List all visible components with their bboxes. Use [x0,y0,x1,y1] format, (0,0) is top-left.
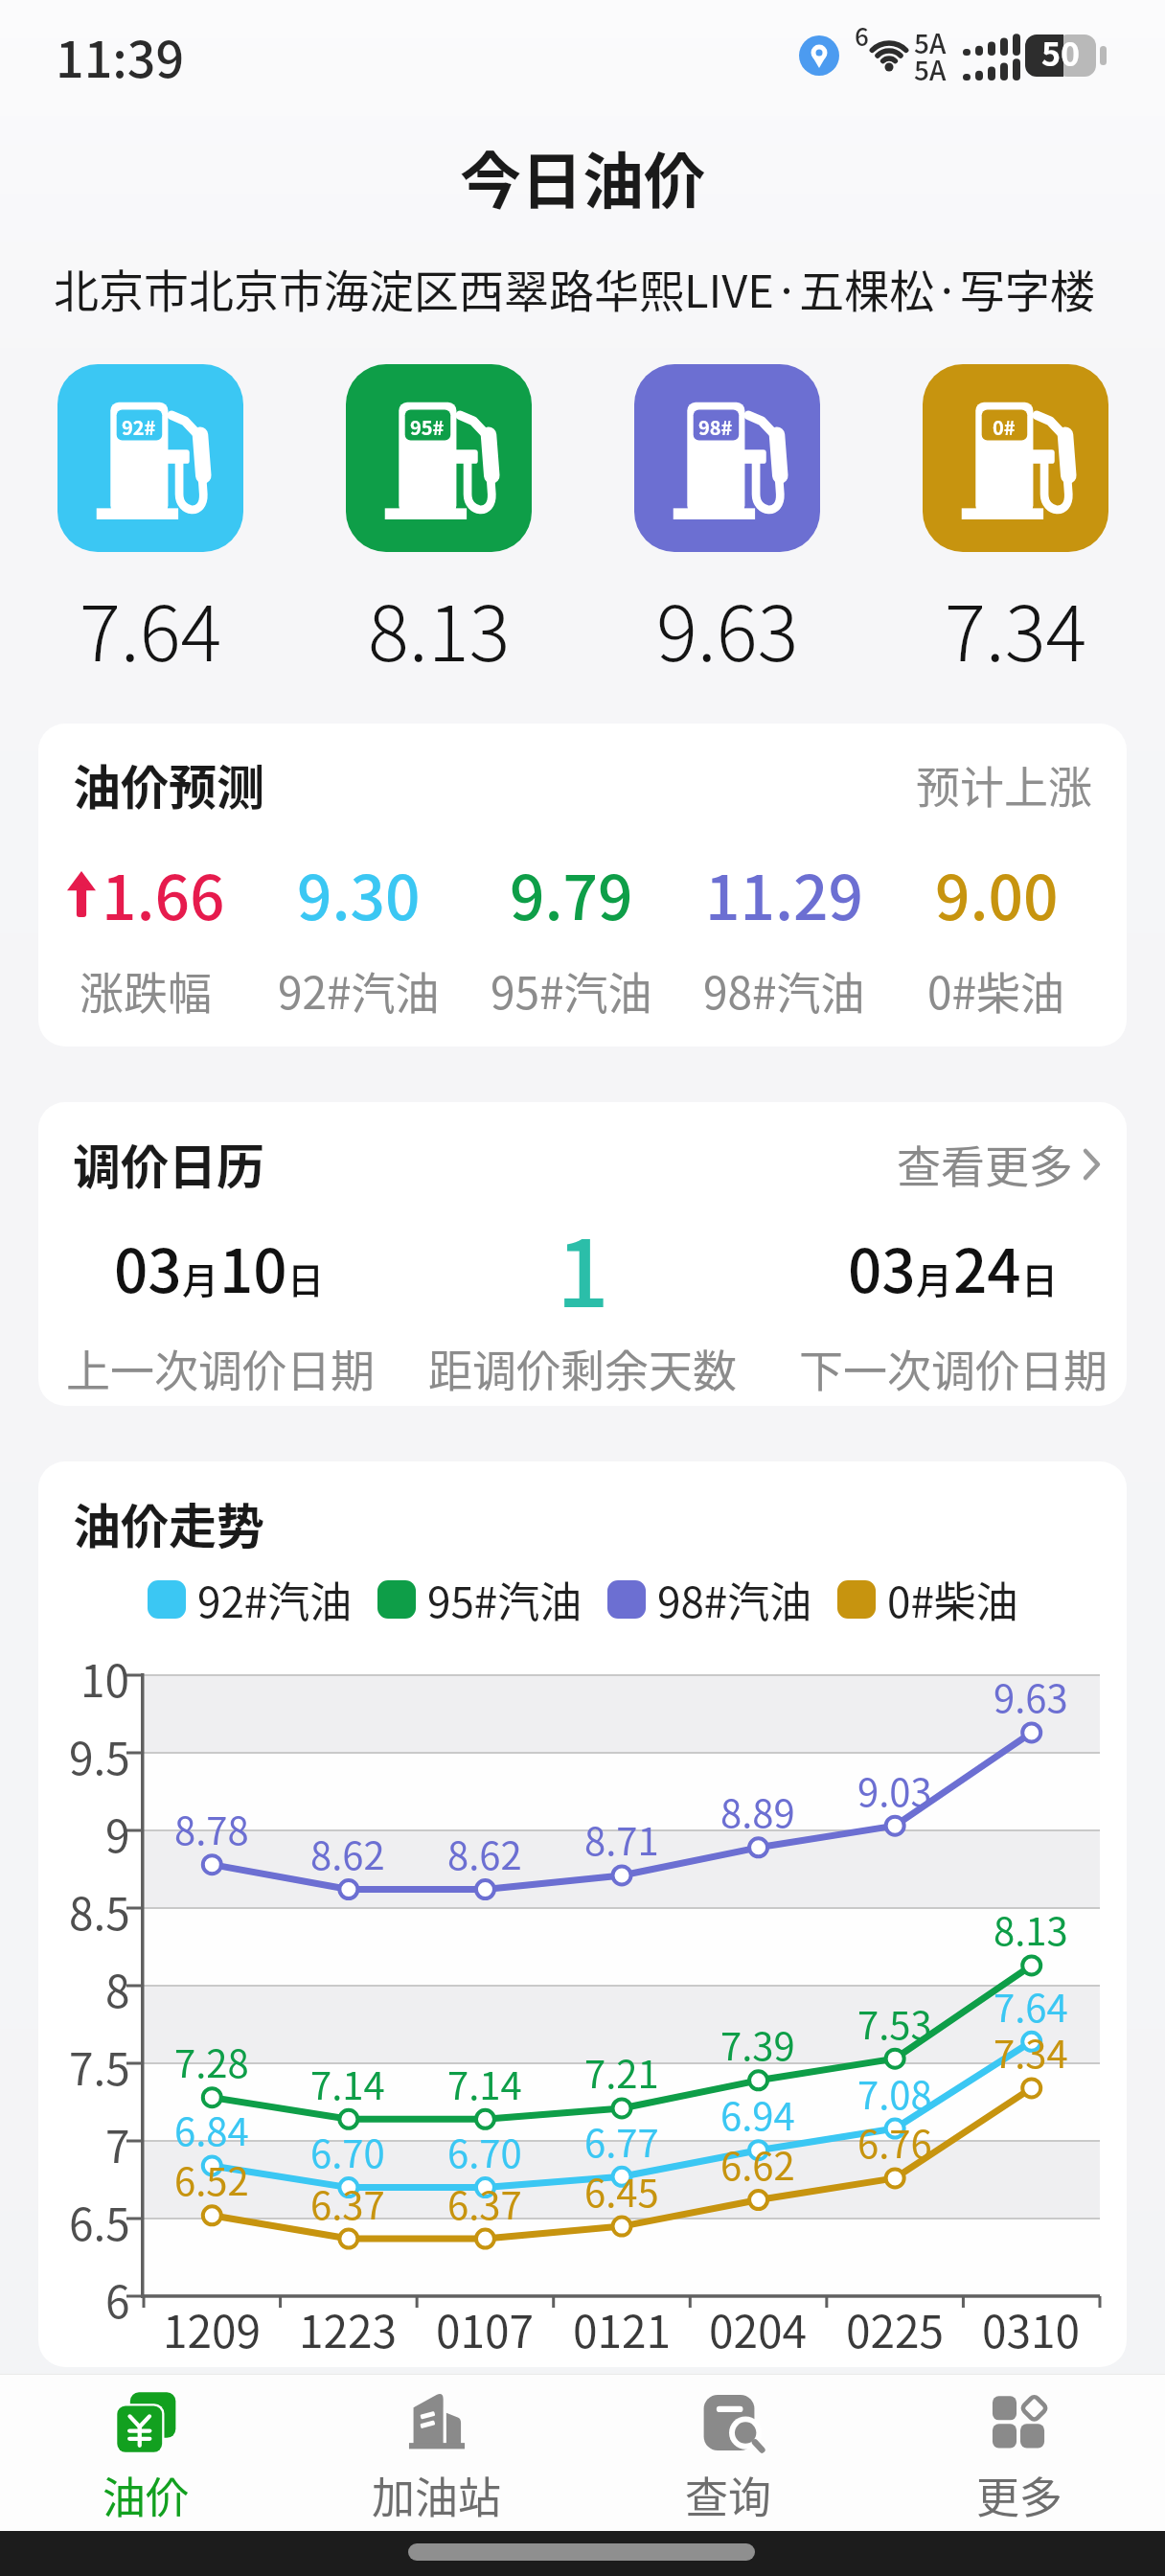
staticText: 油价预测 [73,749,264,818]
staticText: 6.45 [584,2163,659,2219]
staticText: 7.64 [80,572,222,683]
staticText: 0121 [573,2297,672,2357]
staticText: 11.29 [705,849,863,938]
staticText: 月 [916,1252,953,1304]
staticText: 0310 [982,2297,1081,2357]
staticText: 0#柴油 [927,958,1065,1020]
staticText: 7 [105,2112,130,2172]
staticText: 7.28 [174,2034,249,2089]
staticText: 5A [914,23,947,54]
staticText: 92# [122,413,156,441]
staticText: 9.79 [510,849,633,938]
button[interactable]: 95# [346,364,532,552]
staticText: 6.5 [69,2190,130,2249]
staticText: 查询 [685,2464,772,2526]
button[interactable] [38,724,1127,1046]
staticText: 预计上涨 [916,752,1092,816]
staticText: 调价日历 [73,1129,264,1198]
staticText: 6.76 [857,2114,932,2170]
staticText: 8.62 [310,1826,385,1881]
staticText: 10 [219,1224,287,1310]
staticText: 6.52 [174,2151,249,2207]
staticText: 7.14 [310,2056,385,2111]
staticText: 8.62 [447,1826,522,1881]
staticText: 7.39 [720,2016,795,2072]
staticText: 9.63 [994,1668,1068,1724]
staticText: 8.5 [69,1879,130,1939]
staticText: 查看更多 [897,1132,1073,1196]
staticText: 下一次调价日期 [799,1336,1108,1397]
staticText: 6.37 [310,2175,385,2231]
staticText: 95# [410,413,445,441]
staticText: 8.13 [368,572,511,683]
button[interactable]: 加油站 [364,2388,510,2528]
staticText: 6.77 [584,2113,659,2169]
staticText: 8 [105,1957,130,2016]
staticText: 7.14 [447,2056,522,2111]
staticText: 涨跌幅 [80,958,212,1020]
staticText: 0225 [846,2297,945,2357]
staticText: 1 [557,1201,609,1334]
staticText: 98#汽油 [657,1569,812,1630]
staticText: 6 [855,17,869,50]
staticText: 距调价剩余天数 [428,1336,737,1397]
staticText: 6.70 [310,2124,385,2179]
staticText: 0# [993,413,1016,441]
button[interactable]: 0# [923,364,1108,552]
staticText: 7.64 [994,1978,1068,2034]
button[interactable]: 更多 [947,2388,1092,2528]
staticText: 北京市北京市海淀区西翠路华熙LIVE·五棵松·写字楼 [54,255,1095,320]
button[interactable]: 今日油价 [0,130,1165,222]
staticText: 油价 [103,2464,190,2526]
staticText: 6.37 [447,2175,522,2231]
staticText: 8.89 [720,1783,795,1839]
staticText: 0107 [436,2297,535,2357]
staticText: 5A [914,50,947,80]
staticText: 95#汽油 [491,958,652,1020]
staticText: 9 [105,1802,130,1861]
staticText: 日 [287,1252,325,1304]
staticText: 98#汽油 [703,958,865,1020]
staticText: 1223 [299,2297,398,2357]
button[interactable]: 油价 [73,2388,218,2528]
staticText: 更多 [976,2464,1063,2526]
staticText: 月 [182,1252,219,1304]
staticText: 7.34 [994,2024,1068,2080]
staticText: 0204 [709,2297,808,2357]
staticText: 95#汽油 [427,1569,582,1630]
staticText: 6.62 [720,2136,795,2192]
button[interactable] [38,1102,1127,1406]
staticText: 7.34 [945,572,1087,683]
staticText: 0#柴油 [887,1569,1018,1630]
staticText: 9.5 [69,1724,130,1783]
staticText: 8.78 [174,1801,249,1856]
staticText: 上一次调价日期 [66,1336,375,1397]
staticText: 7.08 [857,2065,932,2121]
staticText: 03 [114,1224,182,1310]
staticText: 6.70 [447,2124,522,2179]
staticText: 03 [848,1224,916,1310]
staticText: 今日油价 [460,132,705,221]
button[interactable]: 98# [634,364,820,552]
staticText: 油价走势 [73,1488,264,1557]
staticText: 10 [80,1646,130,1706]
staticText: 6.94 [720,2086,795,2142]
staticText: 1.66 [102,849,225,938]
button[interactable]: 查询 [655,2388,801,2528]
staticText: 9.63 [656,572,799,683]
staticText: 9.30 [297,849,421,938]
staticText: 24 [953,1224,1021,1310]
staticText: 11:39 [56,20,185,92]
button[interactable]: 92# [57,364,243,552]
staticText: 92#汽油 [197,1569,353,1630]
staticText: 8.71 [584,1811,659,1867]
staticText: 加油站 [372,2464,502,2526]
staticText: 92#汽油 [278,958,440,1020]
staticText: 7.53 [857,1995,932,2051]
staticText: 1209 [163,2297,262,2357]
staticText: 8.13 [994,1901,1068,1957]
staticText: 7.5 [69,2035,130,2094]
staticText: 6.84 [174,2102,249,2157]
staticText: 9.03 [857,1762,932,1818]
button[interactable]: 查看更多 [824,1131,1102,1196]
